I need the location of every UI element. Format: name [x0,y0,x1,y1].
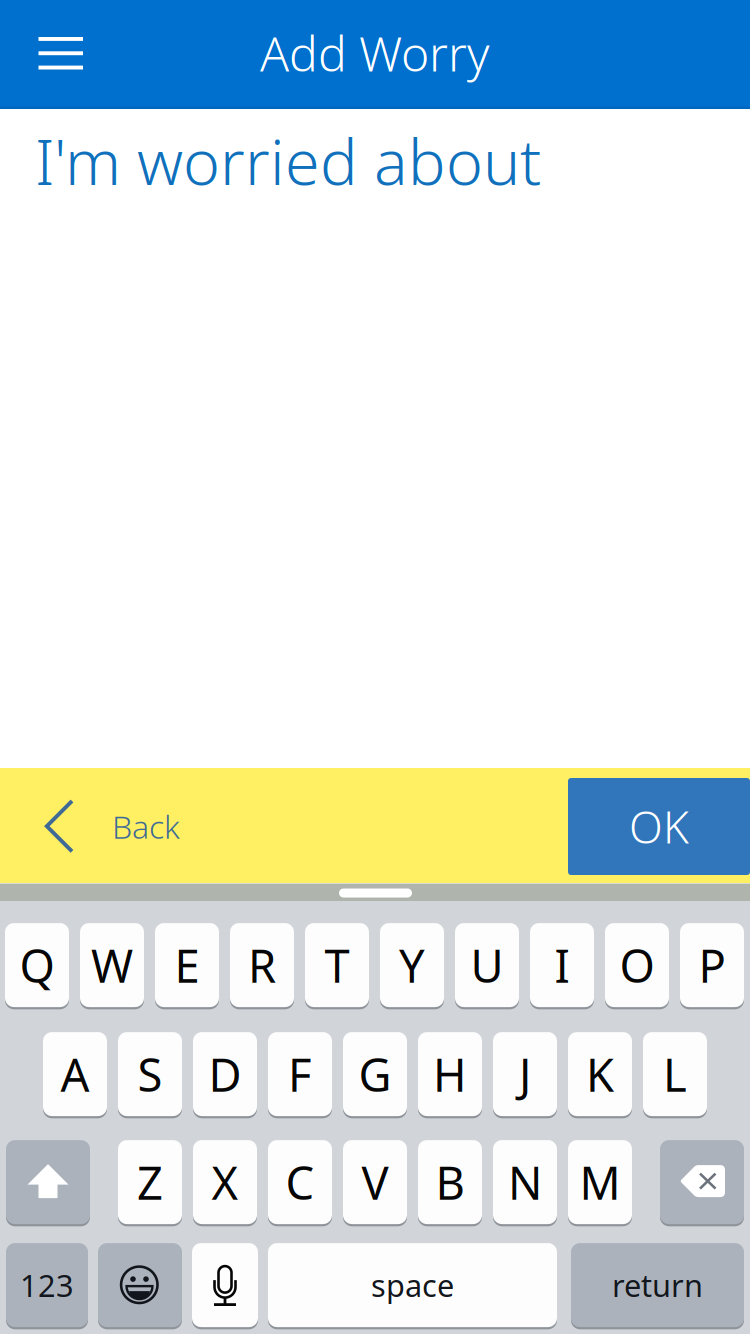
button[interactable]: space [268,1242,557,1328]
button[interactable]: OK [568,778,750,875]
button[interactable]: A [43,1031,107,1117]
staticText: M [579,1152,620,1212]
button[interactable]: Y [380,922,444,1008]
staticText: Add Worry [260,21,490,85]
staticText: R [248,935,276,995]
staticText: C [285,1152,314,1212]
staticText: Y [399,935,425,995]
staticText: V [361,1152,388,1212]
staticText: G [358,1044,391,1104]
button[interactable]: R [230,922,294,1008]
staticText: Back [112,805,180,847]
button[interactable]: O [605,922,669,1008]
staticText: K [586,1044,614,1104]
staticText: space [371,1265,454,1305]
staticText: U [470,935,503,995]
button[interactable]: S [118,1031,182,1117]
button[interactable]: E [155,922,219,1008]
button[interactable]: 123 [6,1242,88,1328]
button[interactable]: M [568,1139,632,1225]
button[interactable]: K [568,1031,632,1117]
button[interactable]: Emoji [98,1242,182,1328]
button[interactable]: Q [5,922,69,1008]
staticText: OK [629,797,689,856]
staticText: S [137,1044,162,1104]
staticText: return [612,1265,703,1305]
staticText: F [288,1044,312,1104]
staticText: E [174,935,199,995]
button[interactable]: X [193,1139,257,1225]
button[interactable]: V [343,1139,407,1225]
staticText: D [208,1044,241,1104]
staticText: Z [137,1152,163,1212]
button[interactable]: P [680,922,744,1008]
staticText: N [508,1152,542,1212]
button[interactable]: G [343,1031,407,1117]
button[interactable]: T [305,922,369,1008]
button[interactable]: F [268,1031,332,1117]
staticText: B [435,1152,464,1212]
button[interactable]: I [530,922,594,1008]
button[interactable]: J [493,1031,557,1117]
button[interactable]: Menu [22,17,98,93]
staticText: L [663,1044,687,1104]
button[interactable]: B [418,1139,482,1225]
staticText: I [554,935,569,995]
button[interactable]: H [418,1031,482,1117]
button[interactable]: return [571,1242,744,1328]
staticText: X [211,1152,238,1212]
button[interactable]: C [268,1139,332,1225]
staticText: H [433,1044,467,1104]
staticText: A [60,1044,89,1104]
staticText: T [324,935,349,995]
button[interactable]: Delete [660,1139,744,1225]
button[interactable]: N [493,1139,557,1225]
button[interactable]: Dictation [192,1242,258,1328]
staticText: P [698,935,725,995]
button[interactable]: D [193,1031,257,1117]
button[interactable]: U [455,922,519,1008]
staticText: J [519,1044,531,1104]
button[interactable]: Back [0,768,300,883]
staticText: W [91,935,133,995]
button[interactable]: L [643,1031,707,1117]
staticText: 123 [20,1265,74,1305]
staticText: O [619,935,654,995]
button[interactable]: Z [118,1139,182,1225]
button[interactable]: Shift [6,1139,90,1225]
staticText: Q [19,935,54,995]
button[interactable]: W [80,922,144,1008]
staticText: I'm worried about [35,119,541,202]
